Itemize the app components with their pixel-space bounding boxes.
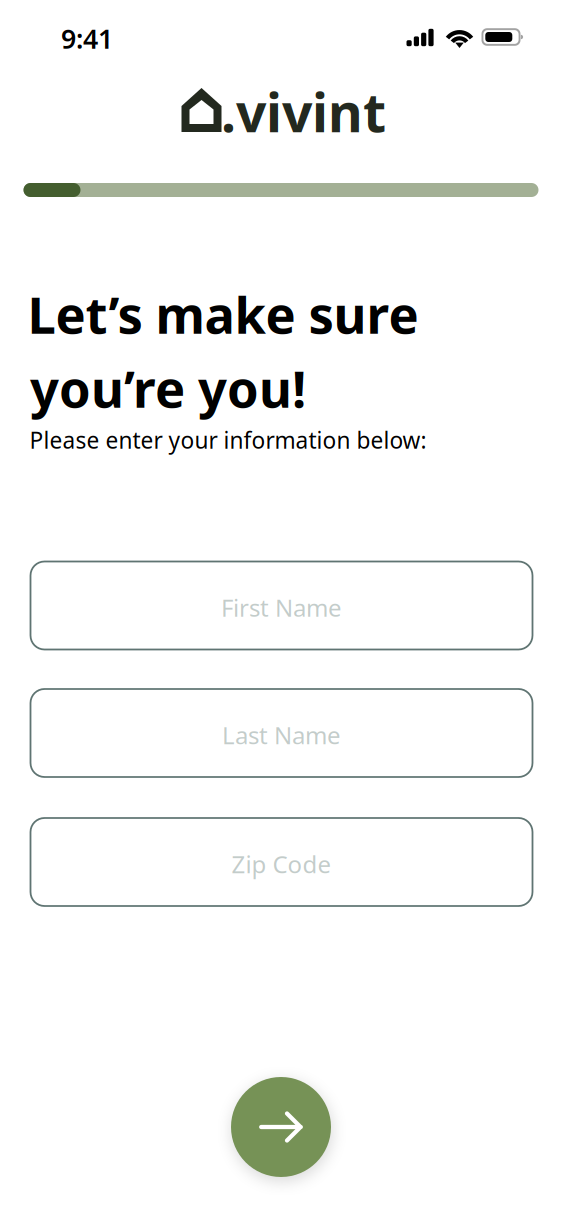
staticText: .vivint xyxy=(221,76,386,147)
button[interactable]: Continue xyxy=(231,1077,331,1177)
staticText: Zip Code xyxy=(231,848,331,880)
staticText: Last Name xyxy=(222,719,341,751)
staticText: Let’s make sure xyxy=(27,280,418,348)
staticText: First Name xyxy=(221,592,342,623)
button[interactable]: Zip Code xyxy=(30,818,532,906)
staticText: 9:41 xyxy=(61,21,113,56)
staticText: Please enter your information below: xyxy=(29,425,426,455)
staticText: you’re you! xyxy=(30,354,306,422)
button[interactable]: First Name xyxy=(30,561,532,649)
button[interactable]: Last Name xyxy=(30,689,532,777)
